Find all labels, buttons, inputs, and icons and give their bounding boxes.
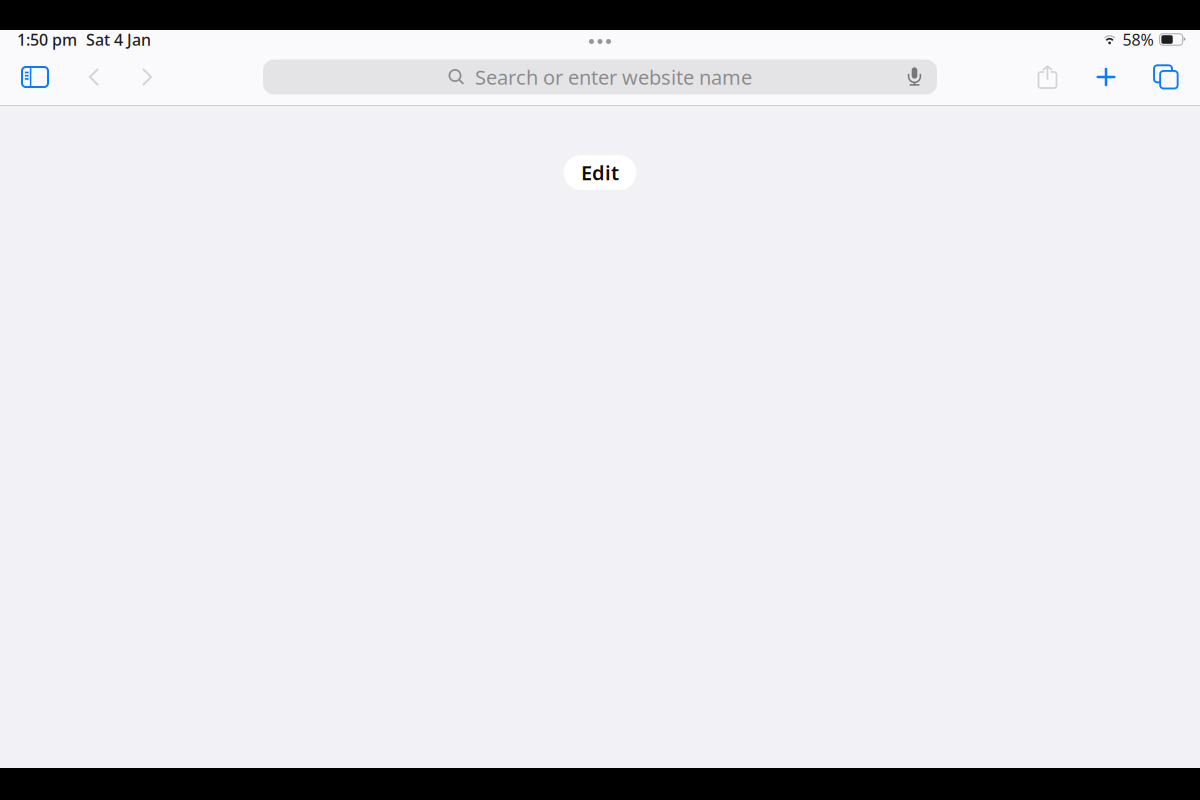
button[interactable]: Share: [1023, 55, 1071, 99]
button[interactable]: Show Tab Overview: [1142, 55, 1190, 99]
button[interactable]: Show Sidebar: [13, 55, 57, 99]
staticText: Edit: [581, 159, 619, 186]
staticText: Sat 4 Jan: [86, 29, 151, 50]
staticText: 58%: [1123, 29, 1154, 50]
button[interactable]: New Tab: [1082, 55, 1130, 99]
button[interactable]: Back: [72, 55, 116, 99]
staticText: 1:50 pm: [17, 29, 77, 50]
button[interactable]: Forward: [125, 55, 169, 99]
staticText: Search or enter website name: [475, 64, 752, 90]
button[interactable]: Search or enter website name: [263, 59, 937, 94]
button[interactable]: Edit: [563, 155, 636, 190]
